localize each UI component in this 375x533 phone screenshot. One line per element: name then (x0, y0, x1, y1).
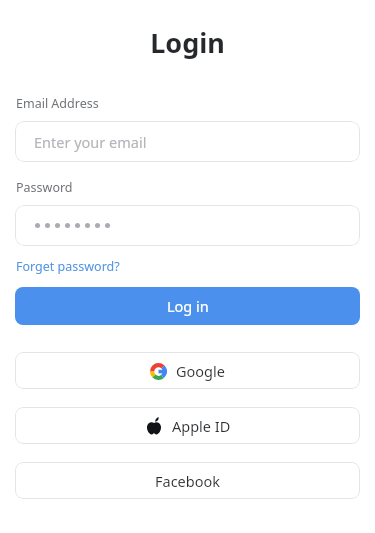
button[interactable] (15, 205, 360, 246)
staticText: Login (150, 24, 225, 61)
button[interactable]: Google (15, 352, 360, 389)
staticText: Forget password? (16, 258, 120, 275)
button[interactable]: Apple ID (15, 407, 360, 444)
staticText: Apple ID (172, 416, 231, 436)
button[interactable]: Forget password? (15, 257, 121, 276)
staticText: Facebook (155, 471, 221, 491)
staticText: Email Address (16, 95, 99, 112)
staticText: Log in (167, 296, 209, 316)
staticText: Password (16, 179, 73, 196)
button[interactable]: Facebook (15, 462, 360, 499)
button[interactable]: Enter your email (15, 121, 360, 162)
staticText: Enter your email (34, 132, 147, 152)
staticText: Google (176, 361, 225, 381)
button[interactable]: Log in (15, 287, 360, 325)
